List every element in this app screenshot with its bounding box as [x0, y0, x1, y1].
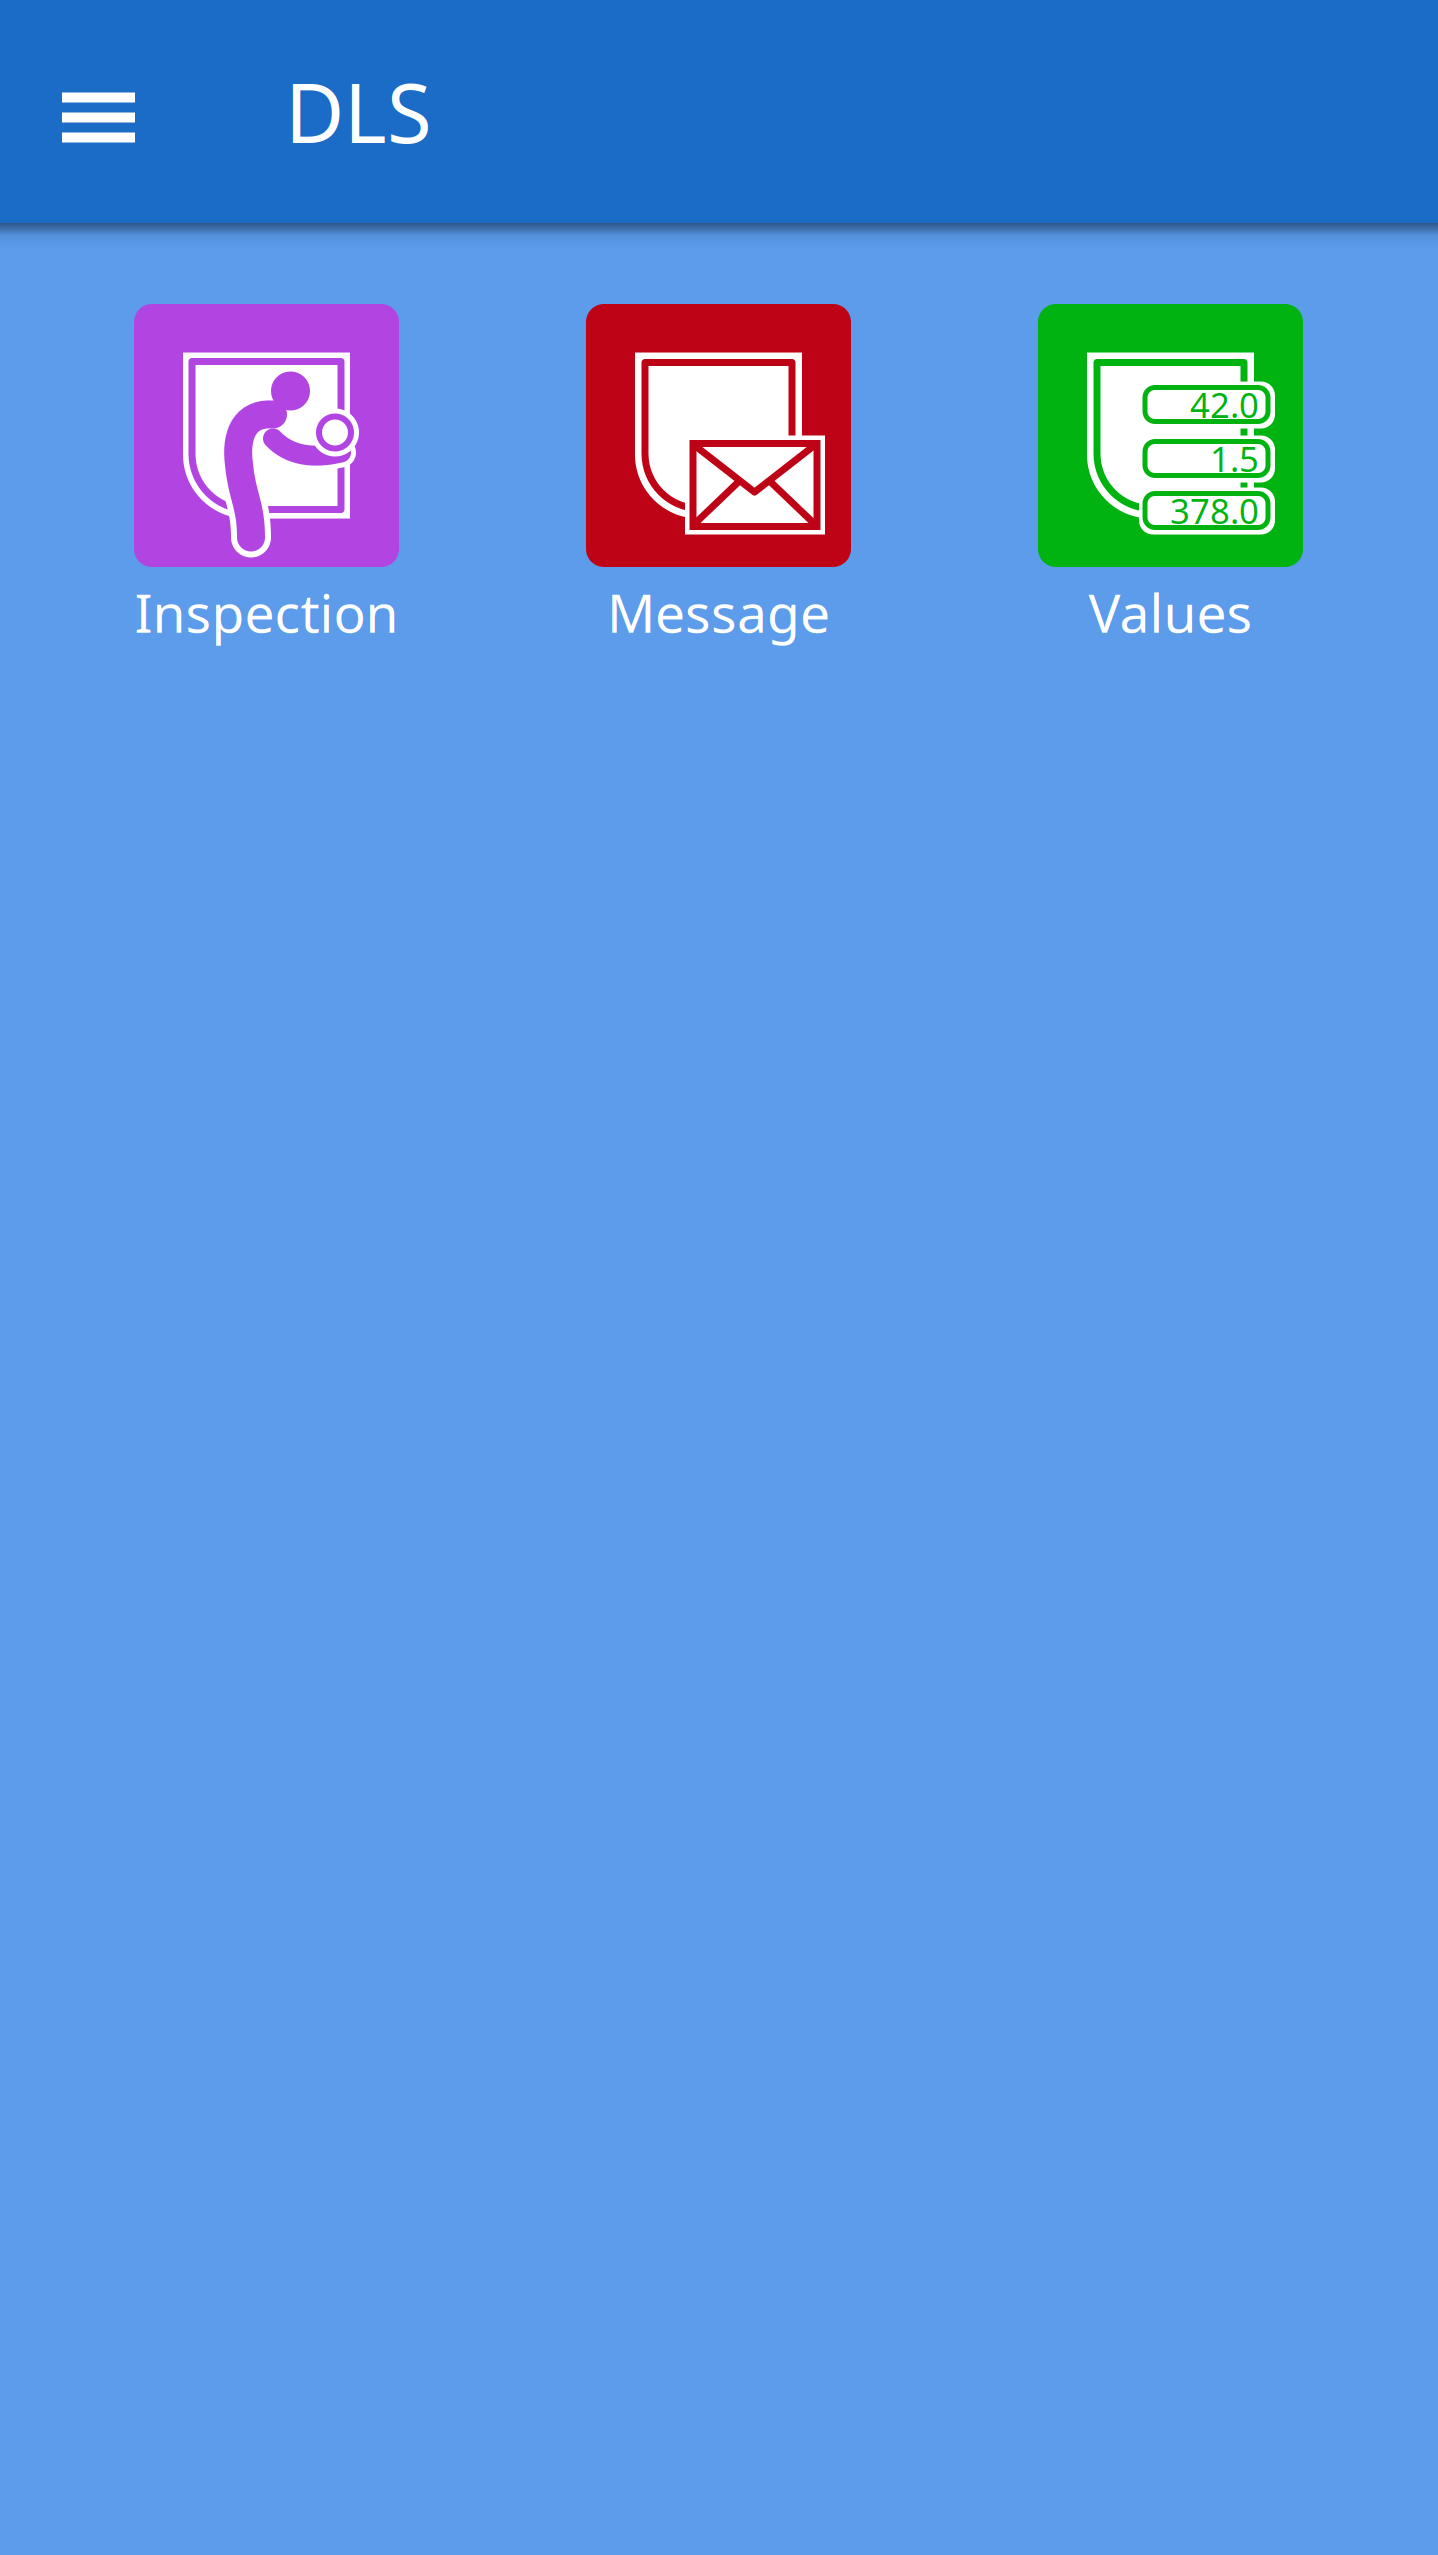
- button[interactable]: Inspection: [134, 304, 399, 647]
- staticText: 1.5: [1210, 435, 1259, 481]
- staticText: Inspection: [134, 577, 398, 647]
- staticText: DLS: [285, 57, 432, 165]
- staticText: 378.0: [1170, 487, 1259, 533]
- button[interactable]: Open navigation menu: [48, 72, 149, 150]
- button[interactable]: Message: [586, 304, 851, 647]
- staticText: Values: [1088, 577, 1252, 647]
- staticText: Message: [607, 577, 830, 647]
- button[interactable]: Values: [1038, 304, 1303, 647]
- staticText: 42.0: [1190, 381, 1259, 427]
